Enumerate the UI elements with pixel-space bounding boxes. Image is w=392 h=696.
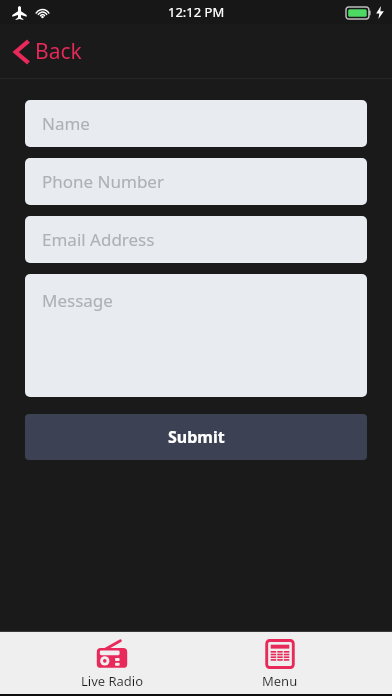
other: Menu xyxy=(265,639,295,669)
other: Live Radio xyxy=(93,639,131,669)
staticText: Message xyxy=(42,289,113,312)
button[interactable]: Menu xyxy=(230,632,330,694)
button[interactable]: Live Radio xyxy=(62,632,162,694)
button[interactable]: Submit xyxy=(25,414,367,460)
staticText: Name xyxy=(42,112,90,135)
button[interactable]: Email Address xyxy=(25,216,367,263)
staticText: Live Radio xyxy=(81,672,144,690)
button[interactable]: Message xyxy=(25,274,367,397)
staticText: Phone Number xyxy=(42,170,164,193)
staticText: Menu xyxy=(262,672,298,690)
button[interactable]: Name xyxy=(25,100,367,147)
button[interactable]: Phone Number xyxy=(25,158,367,205)
staticText: Email Address xyxy=(42,228,155,251)
staticText: 12:12 PM xyxy=(168,3,225,21)
staticText: Submit xyxy=(168,426,225,448)
button[interactable]: Back xyxy=(10,31,86,72)
staticText: Back xyxy=(35,37,82,66)
